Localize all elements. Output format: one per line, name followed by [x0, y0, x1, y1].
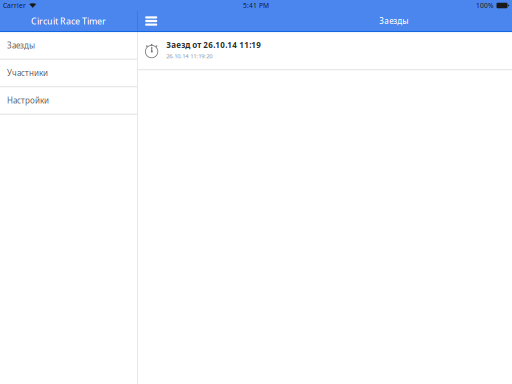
staticText: Заезд от 26.10.14 11:19	[166, 40, 261, 50]
staticText: Участники	[7, 68, 48, 78]
staticText: Carrier	[3, 1, 26, 10]
staticText: 26.10.14 11:19:20	[166, 52, 212, 60]
staticText: 5:41 PM	[243, 1, 269, 10]
staticText: Circuit Race Timer	[31, 15, 106, 27]
button[interactable]: Заезды	[0, 32, 137, 60]
staticText: Настройки	[7, 95, 49, 106]
staticText: Заезды	[7, 40, 35, 51]
button[interactable]: Настройки	[0, 87, 137, 115]
button[interactable]: Заезд от 26.10.14 11:19	[138, 32, 512, 70]
button[interactable]: Menu	[138, 11, 164, 31]
button[interactable]: Участники	[0, 60, 137, 87]
staticText: Заезды	[379, 16, 408, 26]
staticText: 100%	[476, 1, 494, 10]
